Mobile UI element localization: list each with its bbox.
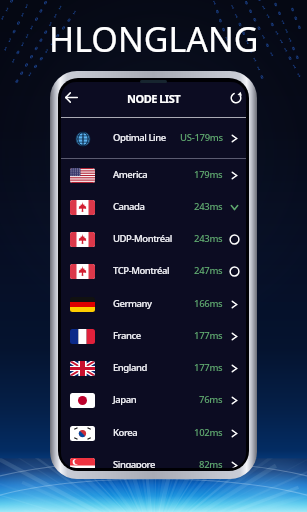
staticText: Korea [113, 426, 138, 439]
staticText: Canada [113, 200, 145, 213]
staticText: America [113, 168, 148, 181]
staticText: 179ms [194, 168, 223, 181]
button[interactable]: Canada [61, 191, 246, 223]
staticText: 177ms [194, 329, 223, 342]
staticText: US-179ms [180, 131, 223, 144]
button[interactable]: TCP-Montréal [61, 255, 246, 287]
staticText: UDP-Montréal [113, 232, 172, 245]
staticText: NODE LIST [127, 91, 181, 106]
button[interactable]: UDP-Montréal [61, 223, 246, 255]
staticText: 177ms [194, 361, 223, 374]
staticText: 243ms [194, 232, 223, 245]
button[interactable]: Singapore [61, 449, 246, 468]
button[interactable]: Japan [61, 384, 246, 416]
staticText: Singapore [113, 458, 155, 468]
button[interactable]: Back [61, 85, 83, 109]
staticText: 166ms [194, 297, 223, 310]
staticText: 247ms [194, 264, 223, 277]
staticText: 243ms [194, 200, 223, 213]
staticText: England [113, 361, 147, 374]
staticText: HLONGLANG [49, 16, 259, 62]
staticText: Optimal Line [113, 131, 166, 144]
staticText: 82ms [199, 458, 223, 468]
staticText: 102ms [194, 426, 223, 439]
button[interactable]: Germany [61, 288, 246, 320]
button[interactable]: France [61, 320, 246, 352]
staticText: Germany [113, 297, 152, 310]
staticText: TCP-Montréal [113, 264, 170, 277]
button[interactable]: America [61, 159, 246, 191]
button[interactable]: England [61, 352, 246, 384]
staticText: France [113, 329, 141, 342]
staticText: 76ms [199, 393, 223, 406]
button[interactable]: Optimal Line [61, 119, 246, 158]
button[interactable]: Korea [61, 417, 246, 449]
button[interactable]: Refresh [224, 86, 246, 110]
staticText: Japan [113, 393, 137, 406]
